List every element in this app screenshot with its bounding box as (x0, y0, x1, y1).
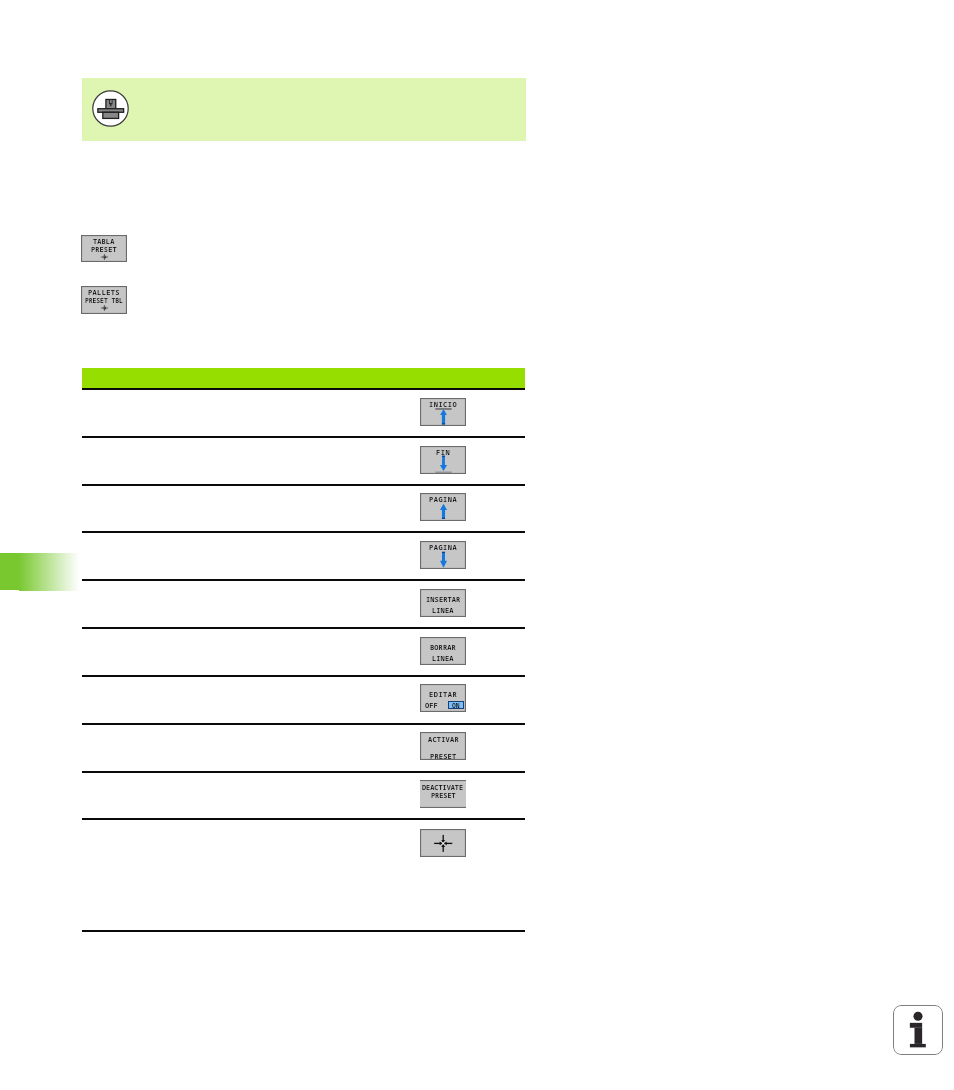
button[interactable]: PAGINA (420, 493, 466, 521)
button[interactable]: ACTIVAR (420, 732, 466, 760)
staticText: PAGINA (429, 495, 458, 505)
button[interactable]: INICIO (420, 398, 466, 426)
staticText: PRESET TBL (85, 296, 123, 305)
staticText: PALLETS (88, 288, 120, 298)
button[interactable]: EDITAR (420, 684, 466, 712)
staticText: TABLA (93, 237, 115, 246)
staticText: PRESET (91, 245, 117, 254)
staticText: LINEA (432, 606, 454, 616)
staticText: OFF (425, 701, 438, 711)
staticText: DEACTIVATE (422, 783, 464, 792)
other: Set datum (420, 829, 466, 857)
staticText: INICIO (429, 400, 458, 410)
button[interactable]: INSERTAR (420, 589, 466, 617)
staticText: ACTIVAR (428, 735, 459, 745)
staticText: LINEA (432, 654, 454, 664)
button[interactable]: PAGINA (420, 541, 466, 569)
button[interactable]: BORRAR (420, 637, 466, 665)
button[interactable]: PALLETS (81, 286, 127, 314)
button[interactable]: DEACTIVATE (420, 780, 466, 808)
staticText: PAGINA (429, 543, 458, 553)
other: Machine manual (92, 90, 129, 127)
staticText: ON (452, 701, 460, 709)
staticText: PRESET (431, 791, 456, 800)
button[interactable]: FIN (420, 446, 466, 474)
button[interactable] (82, 78, 526, 141)
button[interactable]: Information (893, 1005, 943, 1055)
button[interactable]: Set datum (420, 829, 466, 857)
button[interactable]: TABLA (81, 235, 127, 262)
staticText: INSERTAR (426, 595, 461, 605)
staticText: EDITAR (429, 690, 458, 700)
staticText: BORRAR (430, 643, 456, 653)
staticText: FIN (436, 448, 451, 458)
staticText: PRESET (430, 752, 457, 762)
